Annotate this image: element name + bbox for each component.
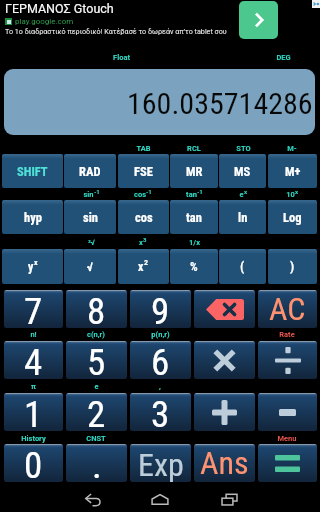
button[interactable]: y	[2, 249, 63, 284]
button[interactable]: 1	[4, 393, 63, 431]
staticText: Rate	[279, 330, 295, 339]
staticText: 1/x	[189, 238, 200, 247]
staticText: 5	[87, 341, 106, 379]
staticText: M-	[287, 144, 297, 153]
staticText: AC	[269, 290, 306, 328]
staticText: 7	[24, 290, 43, 328]
button[interactable]: Exp	[130, 444, 191, 482]
staticText: SHIFT	[17, 164, 48, 179]
button[interactable]: 8	[66, 290, 127, 328]
staticText: n!	[30, 330, 37, 339]
button[interactable]: cos	[118, 200, 169, 234]
button[interactable]: 7	[4, 290, 63, 328]
staticText: TAB	[136, 144, 151, 153]
button[interactable]: MS	[219, 154, 266, 188]
button[interactable]: tan	[170, 200, 218, 234]
staticText: 0	[24, 444, 43, 482]
staticText: History	[21, 434, 46, 443]
other: Minus	[279, 409, 296, 416]
button[interactable]: √	[64, 249, 116, 284]
button[interactable]: hyp	[2, 200, 63, 234]
button[interactable]: M+	[268, 154, 317, 188]
button[interactable]: Equals	[258, 444, 317, 482]
staticText: MS	[234, 164, 251, 179]
button[interactable]: Open advertisement	[239, 1, 278, 39]
staticText: RCL	[187, 144, 201, 153]
button[interactable]: Delete	[194, 290, 255, 328]
button[interactable]: AC	[258, 290, 317, 328]
staticText: 8	[87, 290, 106, 328]
button[interactable]: Back	[76, 488, 108, 510]
staticText: STO	[236, 144, 251, 153]
staticText: 1	[24, 393, 43, 431]
button[interactable]: Minus	[258, 393, 317, 431]
button[interactable]: sin	[64, 200, 116, 234]
staticText: RAD	[79, 164, 101, 179]
button[interactable]: Plus	[194, 393, 255, 431]
staticText: x	[138, 260, 144, 274]
button[interactable]: 2	[66, 393, 127, 431]
staticText: %	[190, 260, 198, 274]
button[interactable]: %	[170, 249, 218, 284]
staticText: π	[31, 382, 36, 391]
button[interactable]: .	[66, 444, 127, 482]
button[interactable]: (	[219, 249, 266, 284]
button[interactable]: 0	[4, 444, 63, 482]
staticText: )	[290, 259, 295, 274]
staticText: FSE	[134, 164, 153, 179]
staticText: 2	[144, 258, 149, 267]
staticText: Menu	[277, 434, 297, 443]
button[interactable]: 4	[4, 341, 63, 379]
staticText: Ans	[200, 444, 249, 482]
button[interactable]: )	[268, 249, 317, 284]
button[interactable]: Multiply	[194, 341, 255, 379]
staticText: x	[244, 188, 248, 195]
staticText: cos	[135, 210, 153, 225]
staticText: 3	[151, 393, 170, 431]
staticText: 10	[286, 190, 295, 199]
button[interactable]: 9	[130, 290, 191, 328]
staticText: Log	[283, 210, 302, 225]
staticText: c(n,r)	[87, 330, 105, 339]
button[interactable]: Divide	[258, 341, 317, 379]
staticText: x	[139, 238, 143, 247]
staticText: ln	[238, 210, 248, 225]
button[interactable]: x	[118, 249, 169, 284]
other: Divide	[275, 347, 301, 374]
staticText: Το 1ο διαδραστικό περιοδικό! Κατέβασέ το…	[5, 27, 265, 35]
button[interactable]: RAD	[64, 154, 116, 188]
other: Multiply	[213, 349, 236, 372]
staticText: sin	[83, 190, 94, 199]
staticText: 6	[151, 341, 170, 379]
staticText: CNST	[86, 434, 106, 443]
staticText: x	[295, 188, 299, 195]
button[interactable]: 6	[130, 341, 191, 379]
staticText: Float	[113, 53, 130, 62]
button[interactable]: MR	[170, 154, 218, 188]
staticText: x	[34, 258, 38, 267]
button[interactable]: 5	[66, 341, 127, 379]
staticText: ³√	[88, 238, 95, 247]
staticText: Exp	[138, 446, 184, 482]
staticText: DEG	[276, 53, 291, 62]
staticText: 9	[151, 290, 170, 328]
button[interactable]: 3	[130, 393, 191, 431]
staticText: -1	[94, 188, 100, 195]
staticText: p(n,r)	[151, 330, 170, 339]
button[interactable]: SHIFT	[2, 154, 63, 188]
button[interactable]: Home	[144, 488, 176, 510]
staticText: e	[239, 190, 244, 199]
staticText: MR	[186, 164, 203, 179]
staticText: 2	[87, 393, 106, 431]
staticText: tan	[186, 190, 197, 199]
button[interactable]: ln	[219, 200, 266, 234]
button[interactable]: Ans	[194, 444, 255, 482]
staticText: sin	[83, 210, 98, 225]
button[interactable]: Log	[268, 200, 317, 234]
button[interactable]: FSE	[118, 154, 169, 188]
staticText: 160.035714286	[127, 86, 313, 121]
button[interactable]: Recent apps	[213, 488, 245, 510]
staticText: tan	[186, 210, 202, 225]
staticText: (	[240, 259, 245, 274]
staticText: hyp	[24, 210, 42, 225]
